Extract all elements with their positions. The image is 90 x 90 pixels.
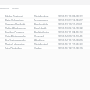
button[interactable]: Eta Systemworks bbox=[0, 39, 90, 41]
staticText: 2024-04-25 10:30:09 bbox=[58, 39, 83, 41]
staticText: Final draft bbox=[34, 27, 47, 29]
staticText: Theta Laborator bbox=[5, 43, 25, 45]
staticText: 2024-01-15 09:30:22 bbox=[58, 15, 83, 17]
staticText: 2024-02-02 14:05:07 bbox=[58, 19, 83, 21]
staticText: 2024-03-21 08:55:14 bbox=[58, 31, 83, 33]
button[interactable]: Epsilon Corpsys bbox=[0, 31, 90, 33]
staticText: Beta Vulgarises bbox=[5, 19, 24, 21]
button[interactable]: Zeta Motorworks bbox=[0, 35, 90, 37]
button[interactable]: Alpha Centauri bbox=[0, 15, 90, 17]
staticText: Eta Systemworks bbox=[5, 39, 26, 41]
staticText: 2024-05-11 17:45:33 bbox=[58, 43, 83, 45]
staticText: Distributed bbox=[34, 43, 48, 45]
button[interactable]: Delta Workgroup bbox=[0, 27, 90, 29]
staticText: Under review bbox=[34, 47, 49, 49]
button[interactable]: Gamma Raylight bbox=[0, 23, 90, 25]
staticText: Rescheduled bbox=[34, 23, 49, 25]
button[interactable]: Reports bbox=[0, 6, 90, 9]
staticText: Alpha Centauri bbox=[5, 15, 24, 17]
staticText: 2024-04-09 13:10:45 bbox=[58, 35, 83, 37]
staticText: Epsilon Corpsys bbox=[5, 31, 25, 33]
staticText: 2024-05-28 12:00:19 bbox=[58, 47, 83, 49]
button[interactable]: Theta Laborator bbox=[0, 43, 90, 45]
staticText: Distribution bbox=[34, 15, 49, 17]
staticText: Gamma Raylight bbox=[5, 23, 26, 25]
staticText: Working draft bbox=[34, 39, 49, 41]
staticText: Reports bbox=[0, 6, 10, 9]
staticText: Delta Workgroup bbox=[5, 27, 26, 29]
staticText: Index bbox=[12, 6, 19, 9]
button[interactable]: Iota Digitalise bbox=[0, 47, 90, 49]
staticText: Zeta Motorworks bbox=[5, 35, 26, 37]
button[interactable]: Beta Vulgarises bbox=[0, 19, 90, 21]
staticText: Iota Digitalise bbox=[5, 47, 22, 49]
staticText: Redistributed bbox=[34, 31, 49, 33]
staticText: Queued today bbox=[34, 35, 49, 37]
staticText: 2024-02-19 11:42:51 bbox=[58, 23, 83, 25]
staticText: 2024-03-06 16:20:38 bbox=[58, 27, 83, 29]
staticText: In progress now bbox=[34, 19, 49, 21]
